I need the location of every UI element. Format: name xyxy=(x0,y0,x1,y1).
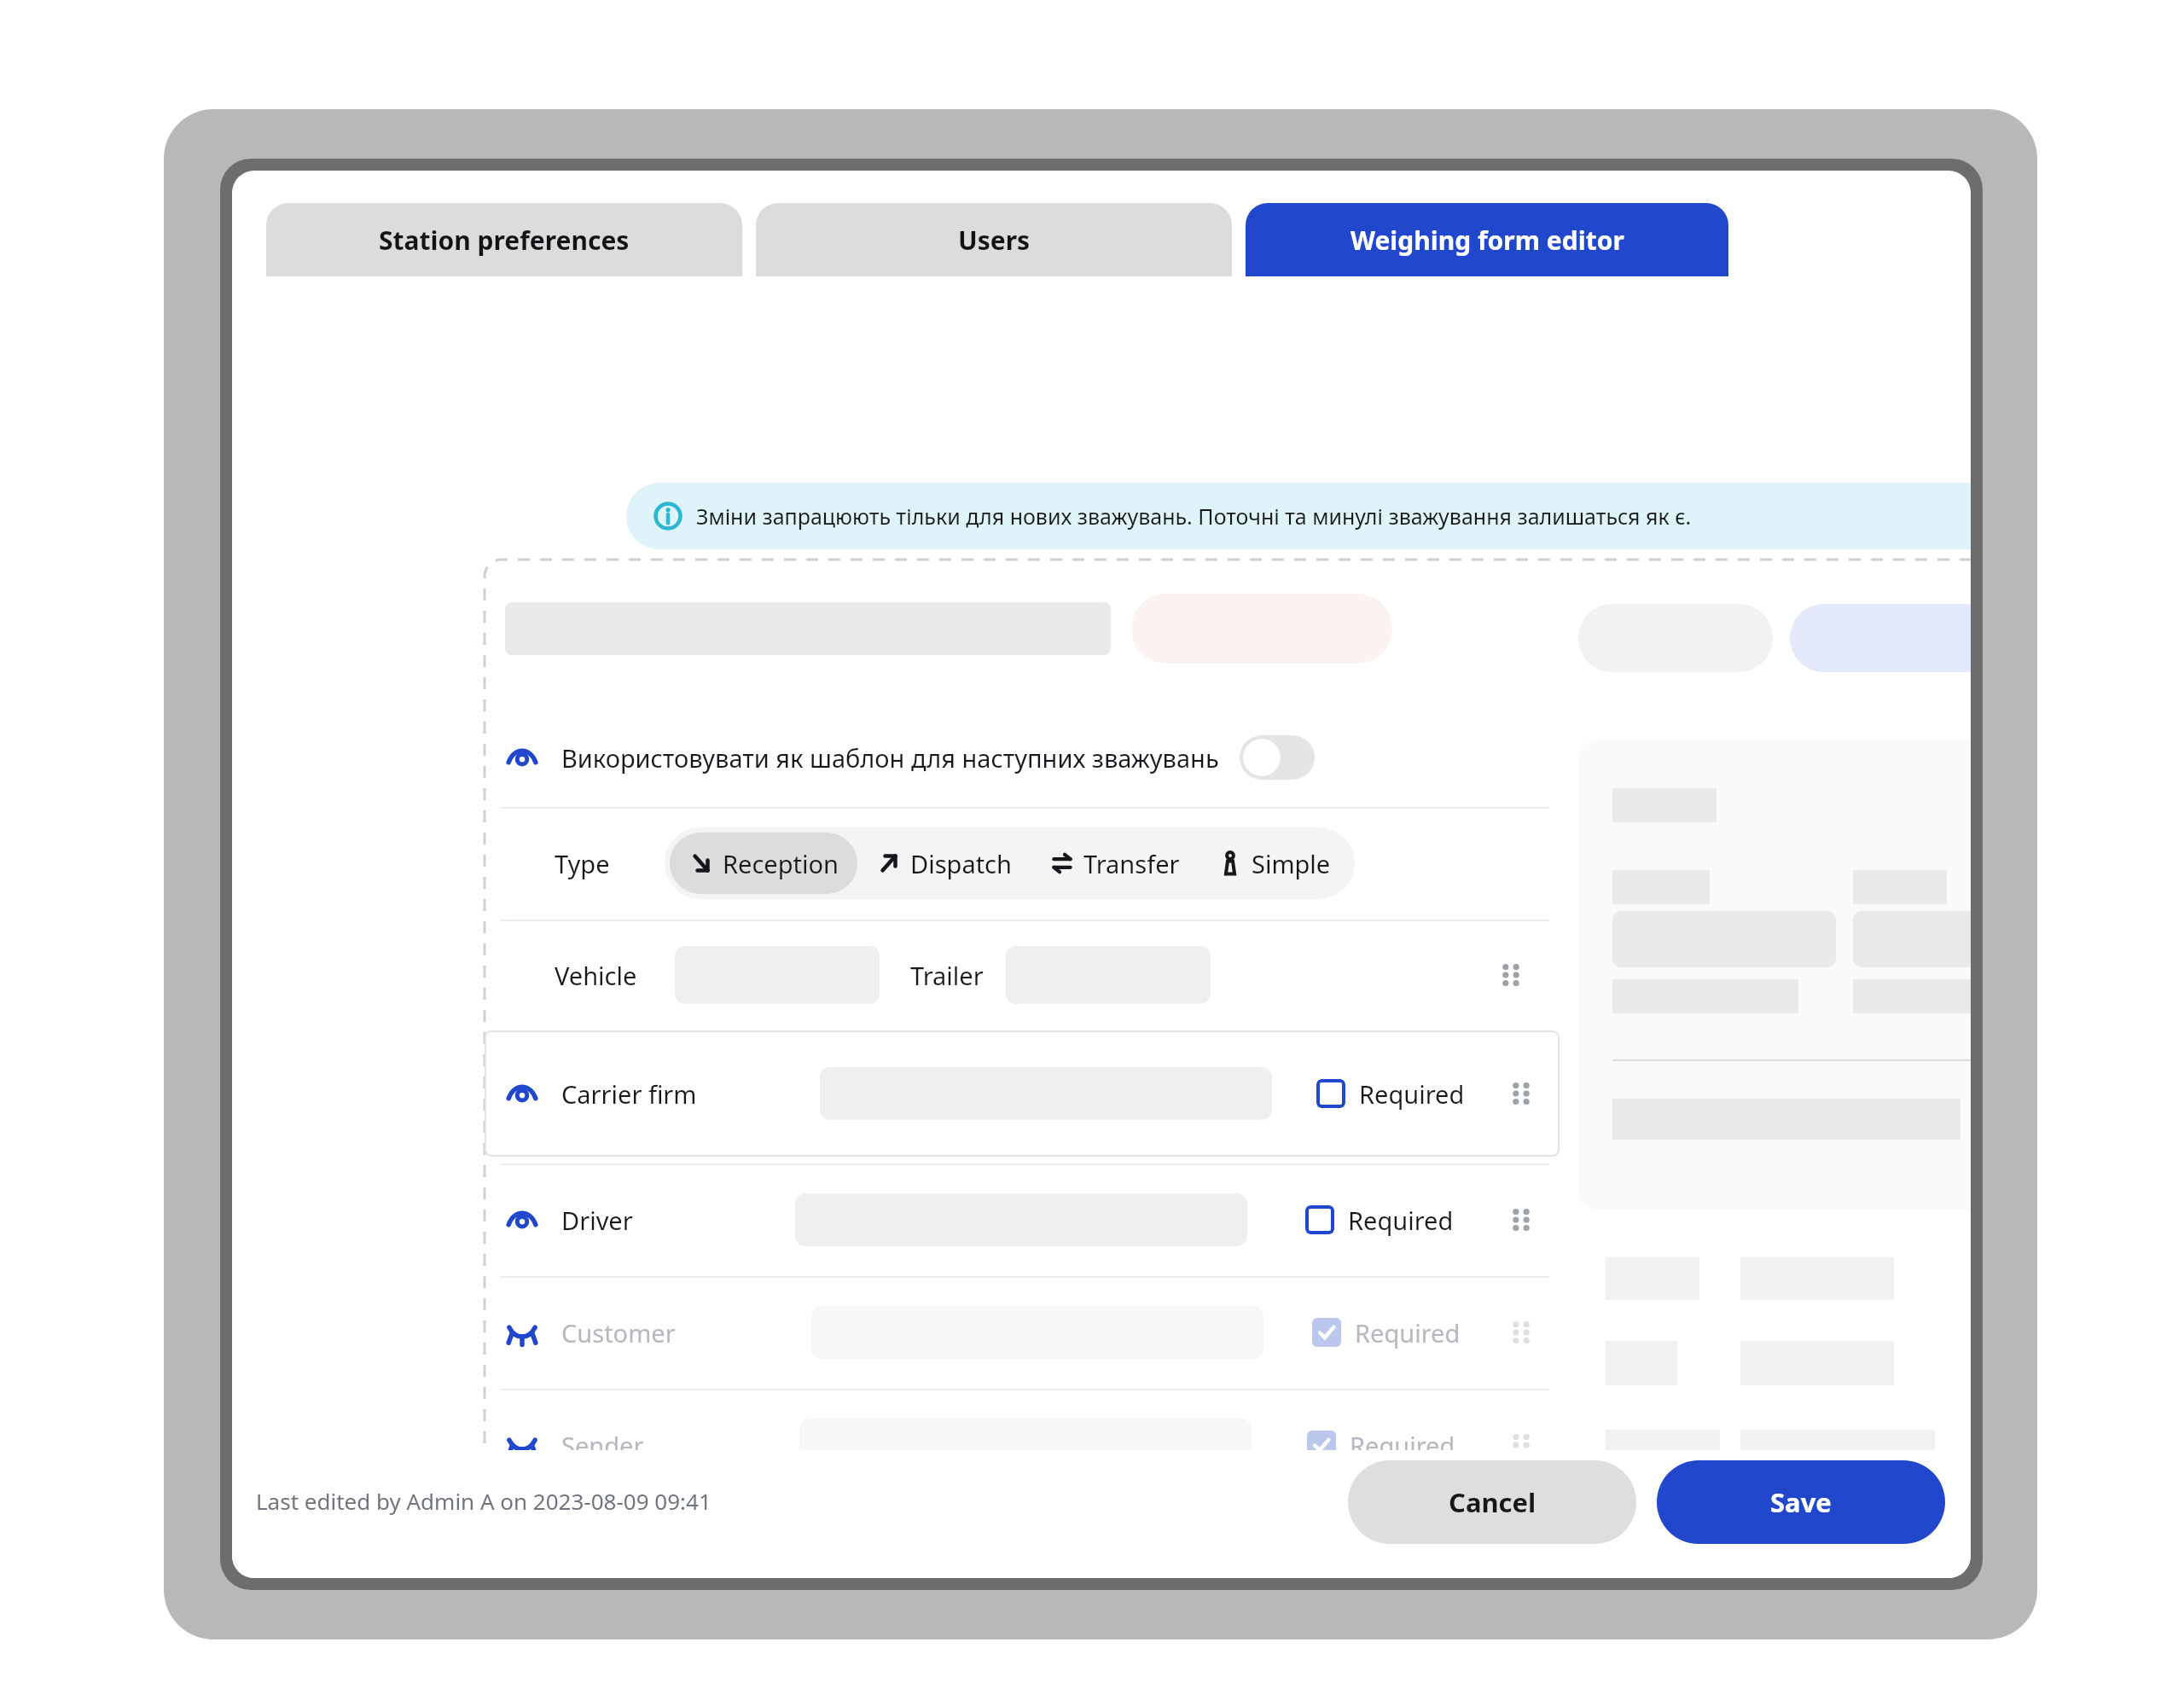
button[interactable]: Save xyxy=(1657,1460,1945,1544)
button[interactable]: Cancel xyxy=(1348,1460,1636,1544)
staticText: Transfer xyxy=(1083,847,1180,880)
staticText: Simple xyxy=(1252,847,1331,880)
button[interactable]: Reorder xyxy=(1500,1311,1542,1354)
staticText: Required xyxy=(1348,1204,1454,1237)
button[interactable]: Reorder xyxy=(1500,1536,1542,1578)
staticText: Trailer xyxy=(910,959,984,992)
button[interactable]: Required toggle xyxy=(1316,1079,1345,1108)
staticText: Використовувати як шаблон для наступних … xyxy=(561,741,1219,775)
staticText: Save xyxy=(1770,1484,1832,1520)
button[interactable]: Carrier firm xyxy=(485,1030,1560,1157)
staticText: Carrier firm xyxy=(561,1077,697,1111)
button[interactable]: Reorder xyxy=(1490,954,1532,996)
button[interactable]: Simple xyxy=(1199,833,1350,894)
button[interactable]: Reception xyxy=(670,833,857,894)
staticText: Зміни запрацюють тільки для нових зважув… xyxy=(696,502,1692,531)
button[interactable]: Reorder xyxy=(1500,1072,1542,1115)
staticText: Cancel xyxy=(1449,1484,1536,1520)
button[interactable]: Driver xyxy=(485,1163,1560,1276)
button[interactable]: Dispatch xyxy=(857,833,1031,894)
staticText: Type xyxy=(555,847,610,880)
staticText: Required xyxy=(1350,1429,1455,1462)
button[interactable]: Reorder xyxy=(1500,1198,1542,1241)
button[interactable]: Customer xyxy=(485,1276,1560,1389)
button[interactable]: Використовувати як шаблон для наступних … xyxy=(500,711,1549,804)
staticText: Dispatch xyxy=(910,847,1012,880)
staticText: Reception xyxy=(723,847,839,880)
staticText: Weighing form editor xyxy=(1350,223,1624,258)
button[interactable]: Users xyxy=(756,203,1232,276)
staticText: Driver xyxy=(561,1204,633,1237)
staticText: Users xyxy=(958,223,1031,258)
button[interactable]: Transfer xyxy=(1031,833,1199,894)
button[interactable]: Required toggle xyxy=(1312,1318,1341,1347)
staticText: Station preferences xyxy=(379,223,630,258)
button[interactable]: Station preferences xyxy=(266,203,742,276)
staticText: Required xyxy=(1355,1316,1461,1349)
button[interactable]: Cargo xyxy=(485,1501,1560,1578)
button[interactable]: Required toggle xyxy=(1305,1205,1334,1234)
button[interactable]: Weighing form editor xyxy=(1246,203,1728,276)
button[interactable]: Required toggle xyxy=(1307,1430,1336,1459)
staticText: Sender xyxy=(561,1429,644,1462)
staticText: Vehicle xyxy=(555,959,637,992)
staticText: Required xyxy=(1359,1077,1465,1111)
button[interactable]: Reorder xyxy=(1500,1424,1542,1466)
staticText: Required xyxy=(1347,1541,1453,1575)
button[interactable]: Sender xyxy=(485,1389,1560,1501)
staticText: Customer xyxy=(561,1316,676,1349)
staticText: Last edited by Admin A on 2023-08-09 09:… xyxy=(256,1486,712,1516)
